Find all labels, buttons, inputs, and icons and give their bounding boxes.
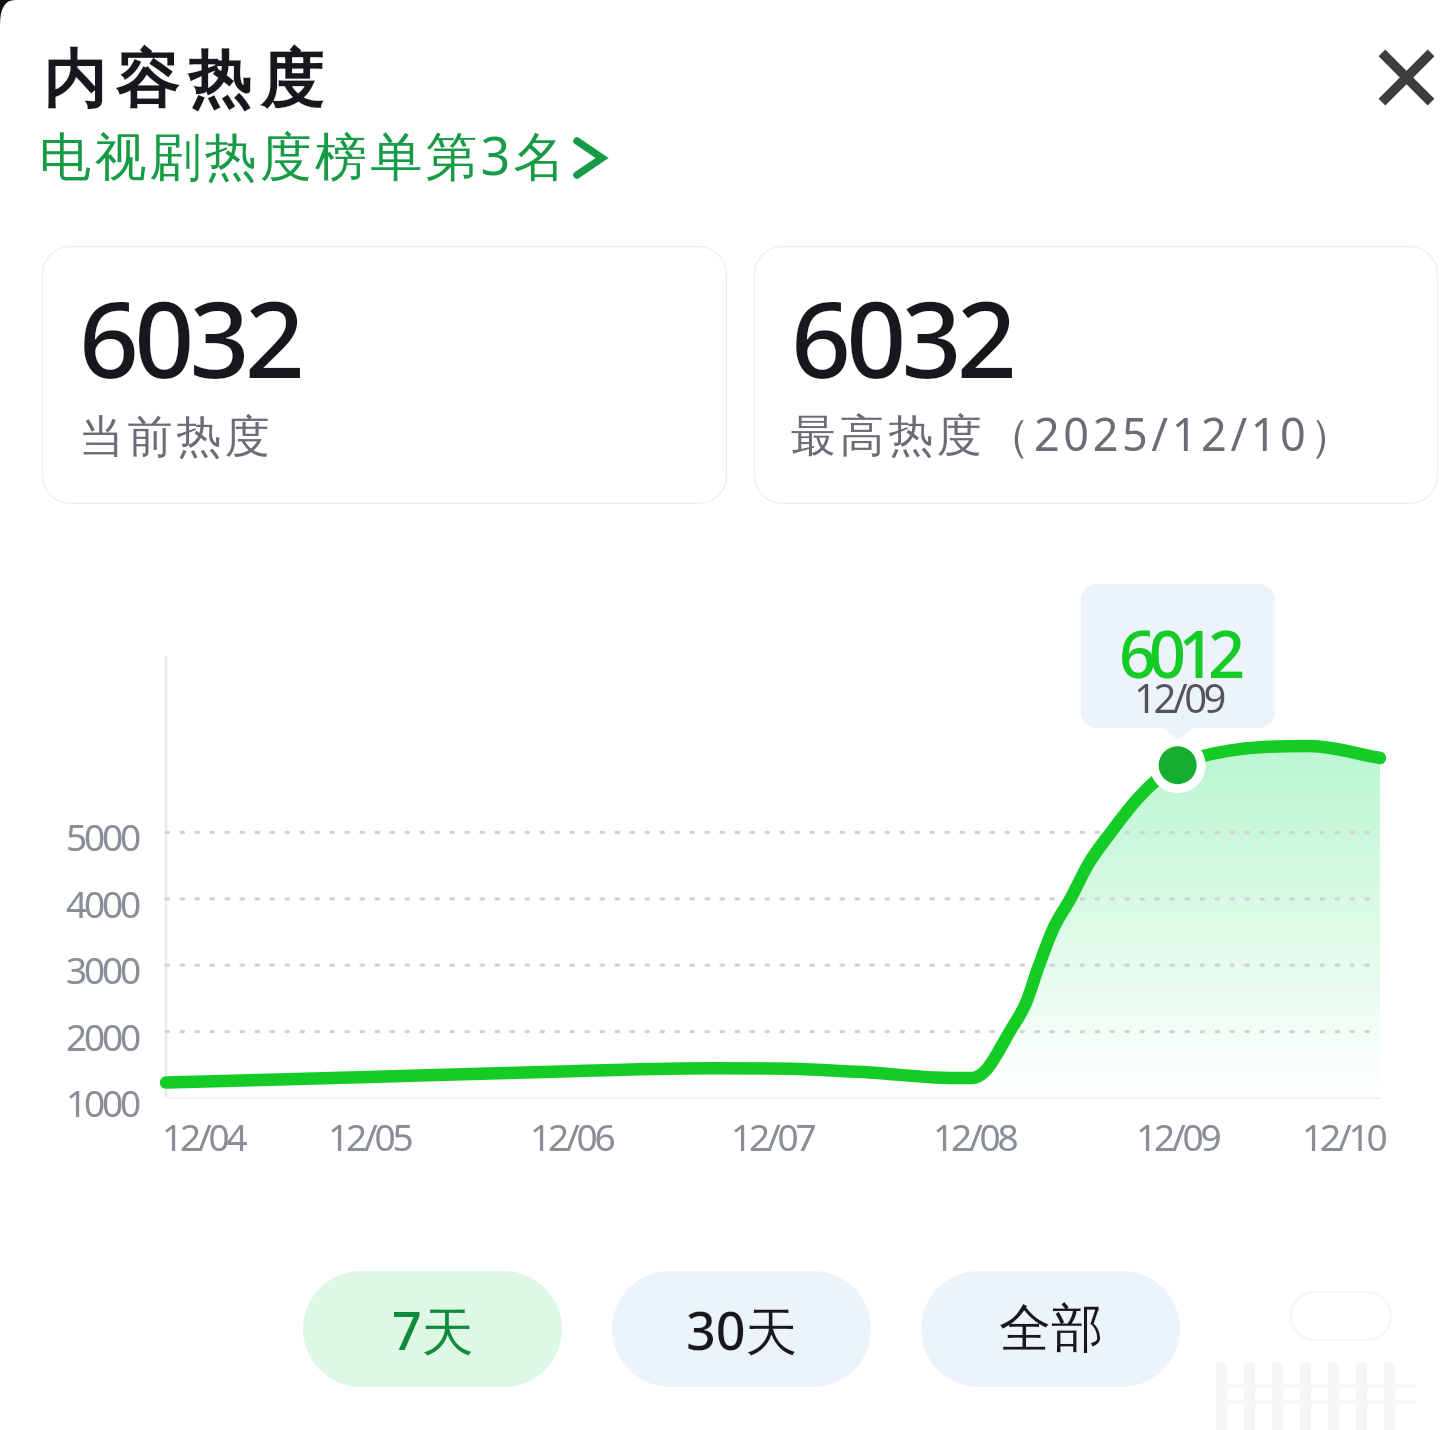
staticText: 12/08 bbox=[933, 1111, 1016, 1161]
staticText: 12/04 bbox=[162, 1111, 245, 1161]
button[interactable]: 全部 bbox=[921, 1271, 1180, 1387]
staticText: 12/09 bbox=[1134, 670, 1223, 724]
staticText: 12/10 bbox=[1302, 1111, 1385, 1161]
button[interactable]: 电视剧热度榜单第3名 bbox=[39, 119, 625, 190]
staticText: 7天 bbox=[392, 1294, 474, 1365]
staticText: 全部 bbox=[999, 1296, 1103, 1362]
button[interactable]: 30天 bbox=[612, 1271, 871, 1387]
staticText: 6032 bbox=[79, 266, 301, 409]
button[interactable]: 7天 bbox=[303, 1271, 562, 1387]
staticText: 2000 bbox=[66, 1011, 138, 1061]
staticText: 12/05 bbox=[328, 1111, 411, 1161]
staticText: 30天 bbox=[686, 1294, 798, 1365]
staticText: 电视剧热度榜单第3名 bbox=[39, 119, 569, 190]
staticText: 5000 bbox=[66, 811, 138, 861]
staticText: 1000 bbox=[66, 1077, 138, 1127]
staticText: 内容热度 bbox=[43, 40, 333, 119]
staticText: 6012 bbox=[1119, 609, 1238, 698]
button[interactable]: 6032 bbox=[754, 246, 1438, 504]
staticText: 3000 bbox=[66, 944, 138, 994]
staticText: 当前热度 bbox=[79, 409, 274, 466]
staticText: 12/07 bbox=[731, 1111, 814, 1161]
staticText: 12/09 bbox=[1136, 1111, 1219, 1161]
staticText: 12/06 bbox=[530, 1111, 613, 1161]
staticText: 4000 bbox=[66, 878, 138, 928]
button[interactable]: 6032 bbox=[42, 246, 727, 504]
staticText: 最高热度（2025/12/10） bbox=[791, 403, 1359, 464]
staticText: 6032 bbox=[791, 266, 1013, 409]
button[interactable]: Close bbox=[1354, 25, 1440, 129]
